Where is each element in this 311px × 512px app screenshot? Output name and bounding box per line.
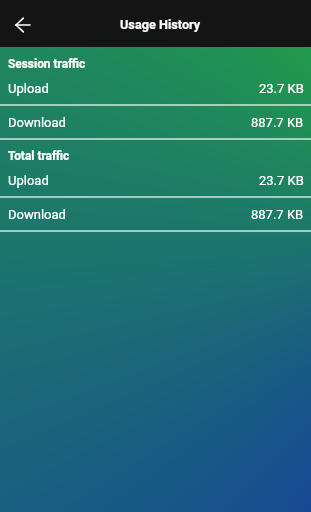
button[interactable]: Upload: [0, 164, 311, 196]
button[interactable]: Back: [0, 0, 45, 47]
staticText: Upload: [8, 81, 49, 96]
staticText: Session traffic: [8, 57, 86, 71]
staticText: Download: [8, 115, 66, 130]
staticText: 887.7 KB: [251, 115, 304, 130]
staticText: Download: [8, 207, 66, 222]
button[interactable]: Download: [0, 198, 311, 230]
staticText: Upload: [8, 173, 49, 188]
staticText: 23.7 KB: [259, 81, 304, 96]
button[interactable]: Upload: [0, 72, 311, 104]
staticText: 887.7 KB: [251, 207, 304, 222]
button[interactable]: Download: [0, 106, 311, 138]
staticText: Usage History: [120, 17, 201, 32]
staticText: 23.7 KB: [259, 173, 304, 188]
staticText: Total traffic: [8, 149, 70, 163]
